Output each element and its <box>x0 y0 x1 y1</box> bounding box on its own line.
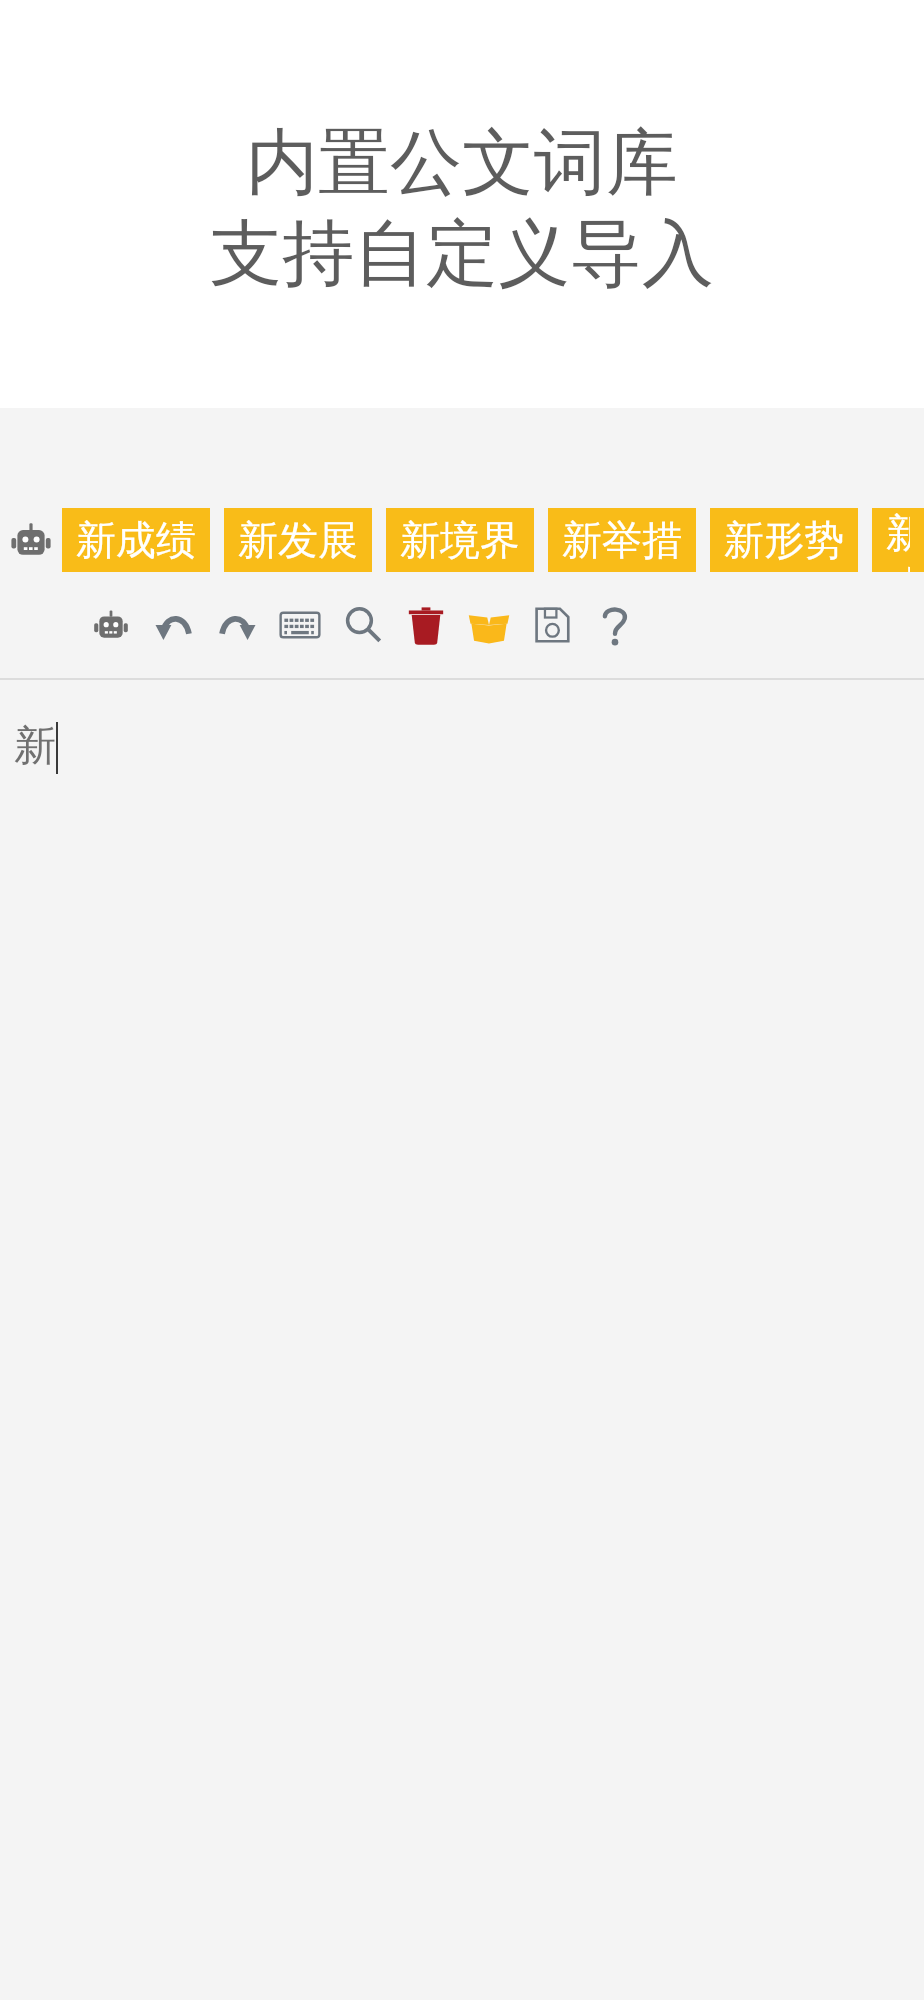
button[interactable]: Undo <box>142 572 205 678</box>
staticText: 新发展 <box>238 515 358 565</box>
staticText: 新成绩 <box>76 515 196 565</box>
staticText: 新举措 <box>562 515 682 565</box>
button[interactable]: 新成绩 <box>872 508 924 572</box>
button[interactable]: Open box <box>457 572 520 678</box>
button[interactable]: 新成绩 <box>62 508 210 572</box>
staticText: 内置公文词库 <box>246 118 678 209</box>
button[interactable]: Search <box>331 572 394 678</box>
button[interactable]: Redo <box>205 572 268 678</box>
button[interactable]: AI assistant <box>79 572 142 678</box>
button[interactable]: Help <box>583 572 646 678</box>
staticText: 新 <box>14 720 56 773</box>
button[interactable]: 新举措 <box>548 508 696 572</box>
button[interactable]: 新发展 <box>224 508 372 572</box>
staticText: 新形势 <box>724 515 844 565</box>
button[interactable]: 新形势 <box>710 508 858 572</box>
staticText: 新成绩 <box>886 508 910 572</box>
button[interactable]: Keyboard <box>268 572 331 678</box>
button[interactable]: 新境界 <box>386 508 534 572</box>
button[interactable]: Delete <box>394 572 457 678</box>
button[interactable]: AI assistant <box>0 508 62 572</box>
staticText: 支持自定义导入 <box>210 209 714 300</box>
button[interactable]: Save <box>520 572 583 678</box>
staticText: 新境界 <box>400 515 520 565</box>
